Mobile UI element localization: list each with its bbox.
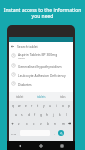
button[interactable]: o — [60, 102, 66, 110]
staticText: . — [54, 132, 55, 136]
staticText: p — [68, 104, 70, 108]
button[interactable]: u — [47, 102, 53, 110]
staticText: q — [12, 104, 14, 108]
staticText: u — [49, 104, 51, 108]
staticText: v — [40, 122, 42, 126]
button[interactable]: Back — [17, 143, 23, 149]
button[interactable]: Leukocyte Adhesion Deficiency — [9, 70, 73, 79]
button[interactable]: r — [29, 102, 35, 110]
button[interactable]: Aspirin Tablets BP 300mg — [9, 50, 73, 61]
staticText: n — [54, 122, 56, 126]
button[interactable]: Search — [58, 130, 64, 136]
button[interactable]: q — [10, 102, 16, 110]
button[interactable]: tablet — [9, 92, 31, 101]
button[interactable]: a — [13, 111, 19, 119]
staticText: y — [43, 104, 45, 108]
button[interactable]: Shift — [10, 121, 15, 126]
button[interactable]: h — [44, 111, 50, 119]
staticText: Search tablet — [17, 44, 38, 49]
button[interactable]: j — [50, 111, 56, 119]
button[interactable]: Diabetes — [9, 79, 73, 88]
button[interactable]: s — [19, 111, 25, 119]
button[interactable]: m — [60, 120, 66, 128]
button[interactable]: n — [52, 120, 58, 128]
button[interactable]: Back — [10, 44, 15, 49]
staticText: x — [26, 122, 28, 126]
button[interactable]: w — [16, 102, 22, 110]
staticText: tablet — [18, 56, 25, 59]
staticText: c — [33, 122, 35, 126]
staticText: ?123 — [11, 132, 17, 135]
button[interactable]: f — [32, 111, 38, 119]
staticText: Instant access to the information you ne… — [2, 7, 83, 20]
staticText: a — [15, 113, 17, 117]
button[interactable]: c — [31, 120, 37, 128]
button[interactable]: tabs — [52, 92, 73, 101]
staticText: s — [21, 113, 23, 117]
button[interactable]: t — [35, 102, 41, 110]
button[interactable]: x — [24, 120, 30, 128]
button[interactable]: Back — [9, 42, 73, 51]
button[interactable]: ?123 — [10, 130, 17, 137]
button[interactable]: y — [41, 102, 47, 110]
staticText: Leukocyte Adhesion Deficiency — [18, 73, 66, 77]
button[interactable]: z — [16, 120, 22, 128]
staticText: d — [28, 113, 30, 117]
button[interactable]: d — [26, 111, 32, 119]
staticText: g — [40, 113, 42, 117]
staticText: b — [47, 122, 49, 126]
staticText: z — [18, 122, 20, 126]
button[interactable]: tablets — [31, 92, 52, 101]
staticText: r — [31, 104, 33, 108]
staticText: tabs — [60, 95, 66, 99]
staticText: f — [34, 113, 36, 117]
button[interactable]: k — [57, 111, 63, 119]
staticText: Diabetes — [18, 82, 32, 86]
staticText: m — [62, 122, 65, 126]
staticText: k — [59, 113, 61, 117]
staticText: w — [18, 104, 21, 108]
button[interactable]: Generalised hypothyroidism — [9, 61, 73, 70]
button[interactable]: Home — [38, 143, 44, 149]
staticText: tablets — [37, 95, 46, 99]
staticText: t — [37, 104, 39, 108]
staticText: h — [46, 113, 48, 117]
button[interactable]: i — [53, 102, 59, 110]
staticText: Aspirin Tablets BP 300mg — [18, 52, 58, 56]
button[interactable]: g — [38, 111, 44, 119]
button[interactable]: e — [23, 102, 29, 110]
staticText: tablet — [16, 95, 24, 99]
staticText: e — [25, 104, 27, 108]
button[interactable]: v — [38, 120, 44, 128]
button[interactable]: . — [53, 130, 56, 137]
button[interactable]: p — [66, 102, 72, 110]
button[interactable]: b — [45, 120, 51, 128]
button[interactable]: Backspace — [67, 121, 72, 126]
staticText: o — [62, 104, 64, 108]
staticText: j — [53, 113, 54, 117]
staticText: Generalised hypothyroidism — [18, 64, 62, 68]
staticText: l — [66, 113, 67, 117]
button[interactable]: Recents — [59, 143, 65, 149]
staticText: i — [56, 104, 57, 108]
button[interactable]: l — [63, 111, 69, 119]
